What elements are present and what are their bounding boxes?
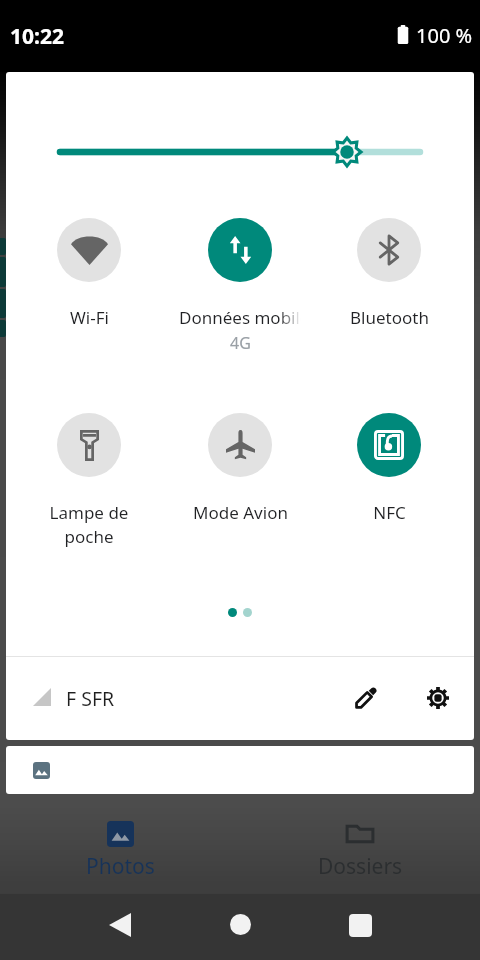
- staticText: Données mobiles: [179, 306, 318, 328]
- staticText: Photos: [86, 852, 155, 881]
- button[interactable]: Lampe de poche: [19, 413, 159, 548]
- staticText: Lampe de poche: [28, 501, 150, 548]
- button[interactable]: Paramètres: [416, 676, 460, 720]
- button[interactable]: Recents: [320, 894, 400, 960]
- button[interactable]: Données mobiles: [170, 218, 310, 354]
- staticText: Wi-Fi: [70, 306, 109, 329]
- button[interactable]: Modifier: [344, 676, 388, 720]
- button[interactable]: Back: [80, 894, 160, 960]
- button[interactable]: Bluetooth: [319, 218, 459, 329]
- staticText: Bluetooth: [350, 306, 429, 329]
- staticText: Dossiers: [318, 852, 403, 881]
- staticText: NFC: [373, 501, 406, 524]
- button[interactable]: Dossiers: [240, 821, 480, 881]
- staticText: Mode Avion: [193, 501, 288, 524]
- button[interactable]: Wi-Fi: [19, 218, 159, 329]
- button[interactable]: NFC: [319, 413, 459, 524]
- button[interactable]: Home: [200, 894, 280, 960]
- button[interactable]: Photos: [0, 821, 240, 881]
- staticText: F SFR: [66, 685, 115, 712]
- button[interactable]: Mode Avion: [170, 413, 310, 524]
- staticText: 10:22: [10, 22, 64, 51]
- staticText: 4G: [230, 332, 251, 354]
- staticText: 100 %: [416, 22, 473, 49]
